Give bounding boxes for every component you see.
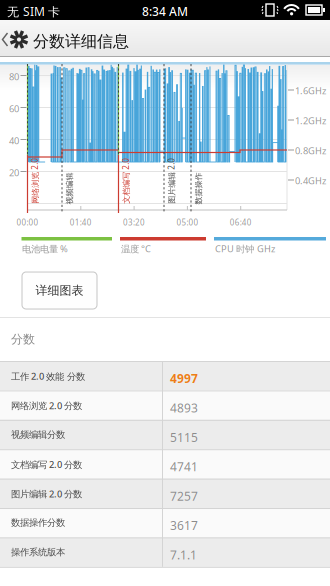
staticText: 网络浏览 2.0 分数 bbox=[11, 399, 82, 412]
button[interactable]: 详细图表 bbox=[22, 272, 97, 309]
staticText: 60 bbox=[9, 102, 19, 115]
staticText: 图片编辑 2.0 分数 bbox=[11, 488, 82, 500]
button[interactable]: 分数详细信息 bbox=[0, 0, 330, 586]
staticText: 操作系统版本 bbox=[11, 546, 65, 558]
staticText: 数据操作分数 bbox=[11, 517, 65, 528]
staticText: 40 bbox=[9, 134, 19, 147]
staticText: 8:34 AM bbox=[142, 3, 188, 19]
staticText: 03:20 bbox=[123, 217, 145, 228]
button[interactable]: 操作系统版本 bbox=[0, 537, 330, 567]
staticText: 视频编辑 bbox=[53, 183, 85, 193]
staticText: 文档编写 2.0 分数 bbox=[11, 458, 82, 471]
staticText: 电池电量 % bbox=[22, 242, 68, 255]
staticText: 分数详细信息 bbox=[33, 31, 129, 51]
staticText: 4997 bbox=[170, 370, 198, 386]
staticText: 20 bbox=[9, 166, 19, 179]
button[interactable]: 视频编辑分数 bbox=[0, 420, 330, 449]
staticText: 80 bbox=[9, 70, 19, 83]
button[interactable]: 工作 2.0 效能 分数 bbox=[0, 361, 330, 390]
staticText: 视频编辑分数 bbox=[11, 429, 65, 440]
staticText: 00:00 bbox=[16, 217, 38, 228]
staticText: 工作 2.0 效能 分数 bbox=[11, 370, 85, 382]
staticText: 7.1.1 bbox=[170, 547, 197, 563]
button[interactable]: 图片编辑 2.0 分数 bbox=[0, 479, 330, 508]
staticText: 4893 bbox=[170, 400, 198, 416]
staticText: 1.2GHz bbox=[295, 114, 326, 127]
staticText: 06:40 bbox=[230, 217, 252, 228]
staticText: 4741 bbox=[170, 459, 198, 475]
staticText: 温度 °C bbox=[121, 242, 151, 255]
button[interactable]: 网络浏览 2.0 分数 bbox=[0, 390, 330, 420]
staticText: 图片编辑 2.0 bbox=[148, 175, 194, 186]
staticText: 分数 bbox=[11, 332, 35, 347]
staticText: CPU 时钟 GHz bbox=[215, 242, 275, 255]
staticText: 0.4GHz bbox=[295, 174, 326, 187]
staticText: 数据操作 bbox=[182, 183, 214, 193]
staticText: 文档编写 2.0 bbox=[103, 175, 149, 186]
staticText: 01:40 bbox=[70, 217, 92, 228]
staticText: 详细图表 bbox=[35, 283, 83, 298]
staticText: 0.8GHz bbox=[295, 144, 326, 157]
staticText: 无 SIM 卡 bbox=[7, 3, 60, 19]
staticText: 05:00 bbox=[176, 217, 198, 228]
button[interactable]: 文档编写 2.0 分数 bbox=[0, 449, 330, 479]
staticText: 1.6GHz bbox=[295, 84, 326, 97]
staticText: 7257 bbox=[170, 488, 198, 504]
staticText: 5115 bbox=[170, 429, 198, 445]
staticText: 3617 bbox=[170, 517, 198, 533]
staticText: 网络浏览 2.0 bbox=[12, 175, 58, 186]
button[interactable]: 数据操作分数 bbox=[0, 508, 330, 537]
